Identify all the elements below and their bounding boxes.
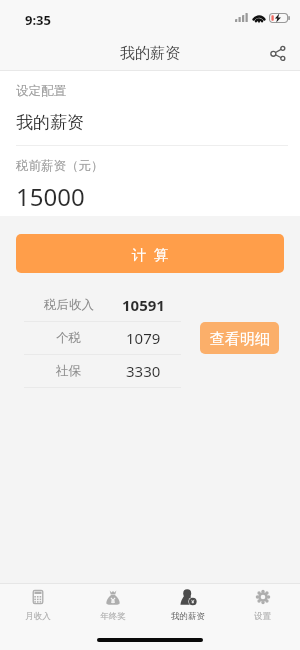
button[interactable]: 计 算: [16, 234, 284, 273]
button[interactable]: 月收入: [0, 584, 75, 624]
button[interactable]: 我的薪资: [150, 584, 225, 624]
staticText: 查看明细: [210, 330, 270, 349]
staticText: 月收入: [25, 611, 51, 622]
staticText: 社保: [56, 363, 81, 379]
staticText: 我的薪资: [171, 611, 205, 622]
staticText: 设置: [254, 611, 271, 622]
staticText: 税后收入: [44, 297, 94, 313]
button[interactable]: 查看明细: [200, 322, 279, 354]
button[interactable]: 设置: [225, 584, 300, 624]
staticText: 年终奖: [100, 611, 126, 622]
staticText: 计 算: [132, 244, 169, 264]
staticText: 3330: [126, 361, 161, 381]
staticText: 设定配置: [16, 83, 66, 99]
staticText: 10591: [122, 295, 165, 315]
staticText: 15000: [16, 180, 85, 213]
staticText: 个税: [56, 330, 81, 346]
staticText: 我的薪资: [16, 112, 84, 133]
staticText: 9:35: [25, 11, 51, 29]
button[interactable]: Share: [262, 37, 294, 69]
staticText: 税前薪资（元）: [16, 158, 104, 174]
staticText: 我的薪资: [120, 44, 180, 63]
staticText: 1079: [126, 328, 161, 348]
button[interactable]: 年终奖: [75, 584, 150, 624]
